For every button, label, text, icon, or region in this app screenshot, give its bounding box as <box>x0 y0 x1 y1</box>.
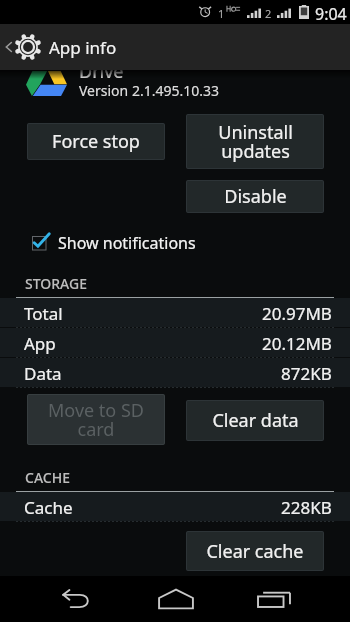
button[interactable]: Force stop <box>27 123 165 160</box>
staticText: Data <box>24 362 62 385</box>
staticText: Drive <box>79 59 124 84</box>
staticText: STORAGE <box>25 274 87 293</box>
staticText: Move to SD card <box>48 398 144 441</box>
button[interactable]: Disable <box>186 180 324 213</box>
staticText: CACHE <box>25 468 70 487</box>
staticText: Show notifications <box>58 232 196 254</box>
staticText: Force stop <box>52 129 140 154</box>
button[interactable]: Home <box>145 576 206 622</box>
staticText: 2 <box>265 6 272 21</box>
button[interactable]: Show notifications <box>0 228 350 258</box>
staticText: Clear cache <box>206 539 304 564</box>
button[interactable]: App <box>0 328 350 357</box>
button[interactable]: Clear data <box>186 400 324 441</box>
staticText: 872KB <box>281 362 332 385</box>
staticText: 9:04 <box>315 3 347 25</box>
staticText: Uninstall updates <box>218 120 293 163</box>
staticText: Version 2.1.495.10.33 <box>79 81 219 100</box>
staticText: 1 <box>218 6 225 21</box>
button[interactable]: Uninstall updates <box>186 114 324 169</box>
button[interactable]: Data <box>0 358 350 387</box>
staticText: 20.12MB <box>262 332 332 355</box>
staticText: Cache <box>24 496 73 519</box>
button[interactable]: App info <box>0 24 350 70</box>
staticText: Disable <box>224 184 287 209</box>
button[interactable]: Move to SD card <box>27 394 165 445</box>
staticText: Total <box>24 302 63 325</box>
button[interactable]: Recent apps <box>243 576 304 622</box>
staticText: Clear data <box>212 408 299 433</box>
button[interactable]: Total <box>0 298 350 327</box>
button[interactable]: Back <box>47 576 108 622</box>
button[interactable]: Cache <box>0 492 350 521</box>
staticText: App <box>24 332 56 355</box>
staticText: App info <box>49 36 117 59</box>
staticText: 228KB <box>281 496 332 519</box>
staticText: 20.97MB <box>262 302 332 325</box>
button[interactable]: Clear cache <box>186 531 324 571</box>
